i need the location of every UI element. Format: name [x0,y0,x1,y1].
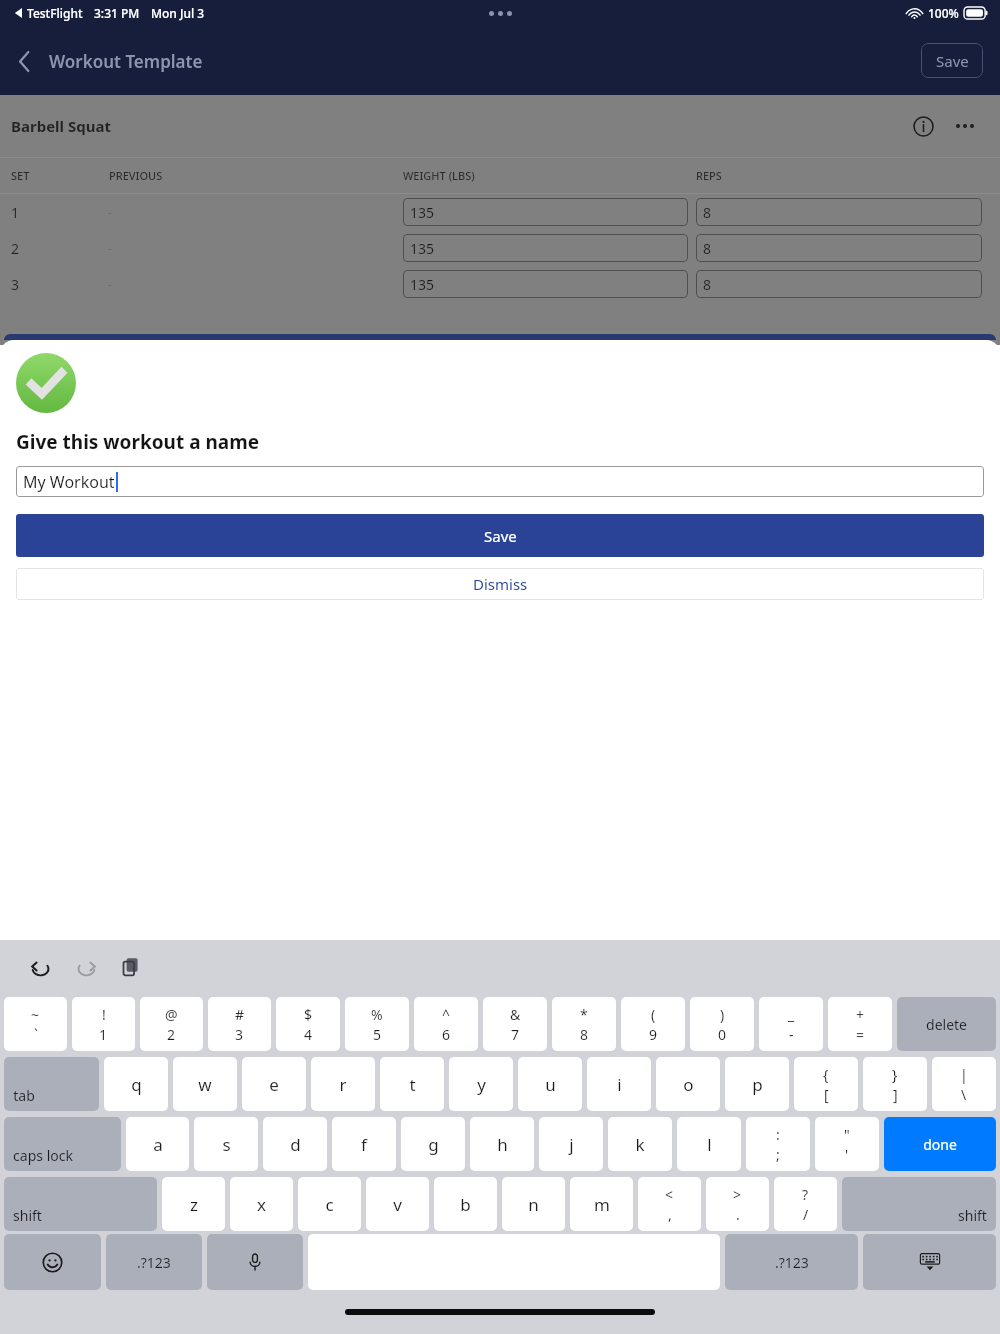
button[interactable]: Dictation [207,1234,303,1290]
button[interactable]: shift [4,1177,157,1231]
staticText: REPS [696,168,722,183]
staticText: k [635,1133,645,1156]
staticText: 2 [167,1025,176,1044]
button[interactable]: * [552,997,616,1051]
button[interactable]: t [380,1057,444,1111]
staticText: 5 [373,1025,382,1044]
button[interactable]: Save [16,514,984,557]
staticText: _ [788,1005,795,1024]
button[interactable]: s [194,1117,258,1171]
button[interactable]: l [677,1117,741,1171]
button[interactable]: Info [910,113,936,139]
button[interactable]: 135 [403,234,688,262]
button[interactable]: d [263,1117,327,1171]
staticText: > [733,1185,742,1204]
staticText: .?123 [775,1253,809,1272]
button[interactable]: & [483,997,547,1051]
button[interactable]: More options [952,113,978,139]
button[interactable]: done [884,1117,996,1171]
staticText: 4 [304,1025,313,1044]
button[interactable]: ? [774,1177,837,1231]
button[interactable]: w [173,1057,237,1111]
button[interactable]: k [608,1117,672,1171]
button[interactable]: 135 [403,198,688,226]
button[interactable]: + [828,997,892,1051]
button[interactable]: n [502,1177,565,1231]
button[interactable]: { [794,1057,858,1111]
button[interactable]: : [746,1117,810,1171]
button[interactable]: Emoji [4,1234,101,1290]
button[interactable]: a [126,1117,189,1171]
button[interactable]: 135 [403,270,688,298]
button[interactable]: Save [921,43,983,78]
button[interactable]: f [332,1117,396,1171]
button[interactable]: .?123 [106,1234,202,1290]
button[interactable]: $ [276,997,340,1051]
button[interactable]: o [656,1057,720,1111]
button[interactable]: u [518,1057,582,1111]
button[interactable]: _ [759,997,823,1051]
button[interactable]: > [706,1177,769,1231]
button[interactable]: x [230,1177,293,1231]
staticText: - [789,1025,794,1044]
staticText: - [108,204,112,220]
button[interactable]: m [570,1177,633,1231]
staticText: j [569,1133,574,1156]
button[interactable]: Undo [22,948,60,986]
button[interactable]: | [932,1057,996,1111]
button[interactable]: @ [140,997,203,1051]
button[interactable]: 8 [696,270,982,298]
button[interactable]: h [470,1117,534,1171]
button[interactable]: Dismiss [16,568,984,600]
button[interactable]: ( [621,997,685,1051]
button[interactable]: 8 [696,234,982,262]
button[interactable]: c [298,1177,361,1231]
staticText: h [497,1133,508,1156]
button[interactable]: tab [4,1057,99,1111]
button[interactable]: g [401,1117,465,1171]
button[interactable]: ~ [4,997,67,1051]
button[interactable]: delete [897,997,996,1051]
button[interactable]: # [208,997,271,1051]
button[interactable]: e [242,1057,306,1111]
staticText: ` [34,1025,38,1044]
staticText: b [460,1193,471,1216]
button[interactable]: r [311,1057,375,1111]
button[interactable]: j [539,1117,603,1171]
button[interactable]: b [434,1177,497,1231]
button[interactable]: 8 [696,198,982,226]
button[interactable]: } [863,1057,927,1111]
button[interactable]: Hide keyboard [863,1234,996,1290]
button[interactable]: Paste [112,948,150,986]
button[interactable]: shift [842,1177,996,1231]
staticText: t [409,1073,416,1096]
staticText: . [736,1205,740,1224]
staticText: Dismiss [473,574,528,594]
button[interactable]: p [725,1057,789,1111]
button[interactable]: % [345,997,409,1051]
button[interactable]: Redo [67,948,105,986]
staticText: ] [893,1085,898,1104]
button[interactable]: z [162,1177,225,1231]
button[interactable]: ^ [414,997,478,1051]
button[interactable]: " [815,1117,879,1171]
button[interactable]: q [104,1057,168,1111]
button[interactable]: My Workout [16,466,984,497]
button[interactable]: caps lock [4,1117,121,1171]
button[interactable]: i [587,1057,651,1111]
button[interactable]: ! [72,997,135,1051]
staticText: r [339,1073,347,1096]
staticText: Save [484,526,517,546]
staticText: | [960,1065,968,1084]
button[interactable]: ) [690,997,754,1051]
button[interactable]: Back [12,49,203,73]
button[interactable]: < [638,1177,701,1231]
button[interactable]: v [366,1177,429,1231]
staticText: 1 [99,1025,108,1044]
staticText: c [325,1193,334,1216]
staticText: 135 [410,203,435,222]
staticText: \ [961,1085,967,1104]
button[interactable]: y [449,1057,513,1111]
button[interactable]: .?123 [725,1234,858,1290]
